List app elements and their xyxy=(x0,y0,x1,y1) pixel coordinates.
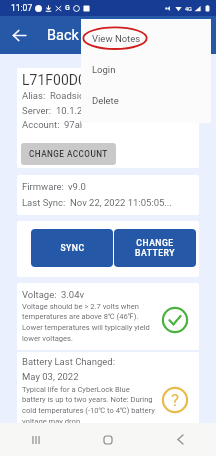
staticText: Battery Last Changed: xyxy=(22,356,116,367)
staticText: Voltage should be > 2.7 volts when tempe… xyxy=(22,302,155,343)
staticText: Nov 22, 2022 11:05:05... xyxy=(70,197,172,208)
staticText: Account: xyxy=(22,119,60,130)
staticText: 4G xyxy=(185,6,192,12)
staticText: Login xyxy=(92,64,116,75)
staticText: 11:07 xyxy=(11,3,33,13)
button[interactable]: CHANGE BATTERY xyxy=(114,229,196,267)
staticText: CHANGE BATTERY xyxy=(135,238,175,258)
staticText: ? xyxy=(171,390,180,410)
button[interactable]: CHANGE ACCOUNT xyxy=(21,143,116,165)
staticText: May 03, 2022 xyxy=(22,371,79,382)
button[interactable]: Delete xyxy=(81,85,211,116)
button[interactable]: SYNC xyxy=(31,229,113,267)
staticText: 10.1.2.3 xyxy=(56,105,91,116)
staticText: View Notes xyxy=(92,33,141,44)
button[interactable]: View Notes xyxy=(81,23,211,54)
button[interactable]: Back xyxy=(144,423,216,456)
button[interactable]: Home xyxy=(72,423,144,456)
staticText: CHANGE ACCOUNT xyxy=(29,149,108,159)
staticText: Server: xyxy=(22,105,52,116)
staticText: v9.0 xyxy=(68,181,86,192)
staticText: G xyxy=(65,4,70,12)
staticText: 3.04v xyxy=(61,289,85,300)
staticText: Alias: xyxy=(22,90,46,101)
staticText: Voltage: xyxy=(22,289,57,300)
button[interactable]: Back xyxy=(0,16,38,54)
staticText: Delete xyxy=(92,95,119,106)
staticText: Back xyxy=(47,27,79,44)
staticText: SYNC xyxy=(60,243,85,253)
staticText: L71F00D0DD xyxy=(22,72,105,88)
staticText: Roadside Box xyxy=(50,90,108,101)
staticText: 97al xyxy=(64,119,83,130)
button[interactable]: Recent apps xyxy=(0,423,72,456)
button[interactable]: Login xyxy=(81,54,211,85)
staticText: Last Sync: xyxy=(22,197,66,208)
staticText: Typical life for a CyberLock Blue batter… xyxy=(22,385,155,426)
staticText: Firmware: xyxy=(22,181,64,192)
